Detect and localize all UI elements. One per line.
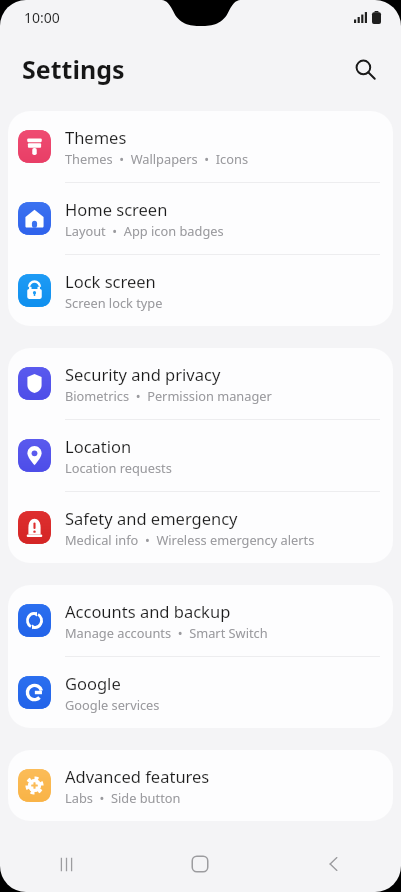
button[interactable]: Accounts and backup — [8, 585, 393, 656]
staticText: Screen lock type — [65, 294, 163, 311]
staticText: Settings — [22, 52, 125, 86]
staticText: Lock screen — [65, 270, 156, 292]
staticText: Advanced features — [65, 765, 210, 787]
staticText: Safety and emergency — [65, 507, 238, 529]
staticText: Location requests — [65, 459, 172, 476]
staticText: Home screen — [65, 198, 168, 220]
button[interactable]: Recent apps — [0, 836, 133, 892]
staticText: Location — [65, 435, 132, 457]
staticText: Google — [65, 672, 121, 694]
button[interactable]: Lock screen — [8, 255, 393, 326]
staticText: Biometrics • Permission manager — [65, 387, 272, 404]
staticText: Google services — [65, 696, 160, 713]
staticText: Manage accounts • Smart Switch — [65, 624, 268, 641]
button[interactable]: Location — [8, 420, 393, 491]
button[interactable]: Themes — [8, 111, 393, 182]
staticText: Labs • Side button — [65, 789, 181, 806]
button[interactable]: Back — [267, 836, 401, 892]
button[interactable]: Google — [8, 657, 393, 728]
staticText: Layout • App icon badges — [65, 222, 224, 239]
button[interactable]: Advanced features — [8, 750, 393, 821]
staticText: Themes — [65, 126, 127, 148]
staticText: Security and privacy — [65, 363, 221, 385]
button[interactable]: Search — [343, 47, 387, 91]
button[interactable]: Home — [133, 836, 267, 892]
staticText: Themes • Wallpapers • Icons — [65, 150, 249, 167]
button[interactable]: Security and privacy — [8, 348, 393, 419]
staticText: Accounts and backup — [65, 600, 231, 622]
button[interactable]: Safety and emergency — [8, 492, 393, 563]
staticText: 10:00 — [24, 8, 60, 27]
staticText: Medical info • Wireless emergency alerts — [65, 531, 315, 548]
button[interactable]: Home screen — [8, 183, 393, 254]
